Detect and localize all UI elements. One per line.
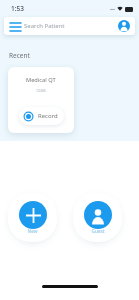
staticText: Medical QT: [26, 76, 56, 84]
staticText: 1:53: [11, 4, 24, 13]
staticText: 12345: [36, 88, 46, 93]
button[interactable]: Account: [118, 20, 130, 32]
button[interactable]: Medical QT: [8, 67, 74, 133]
button[interactable]: New: [8, 193, 57, 242]
staticText: Guest: [91, 228, 105, 235]
button[interactable]: Record: [19, 107, 64, 125]
staticText: Recent: [9, 51, 30, 60]
staticText: Search Patient: [24, 22, 65, 30]
button[interactable]: Open navigation menu: [10, 22, 21, 32]
button[interactable]: Open navigation menu: [4, 17, 135, 35]
staticText: Record: [38, 112, 58, 120]
button[interactable]: Guest: [73, 193, 122, 242]
staticText: New: [27, 228, 38, 235]
